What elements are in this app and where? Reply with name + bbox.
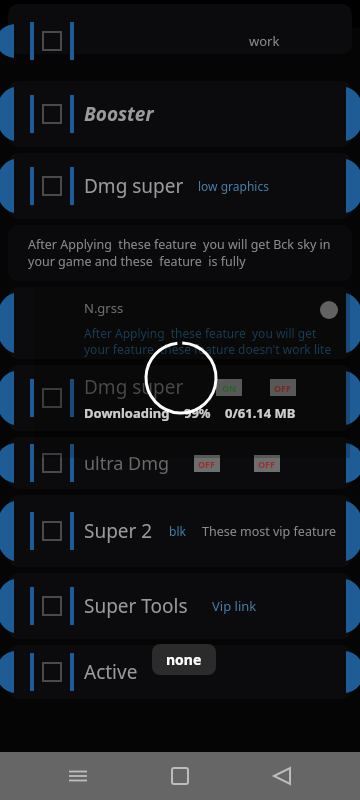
staticText: After Applying these feature you will ge… — [84, 325, 336, 357]
staticText: work — [249, 32, 280, 50]
staticText: N.grss — [84, 299, 124, 317]
staticText: These most vip feature — [202, 523, 337, 540]
button[interactable]: Booster — [0, 81, 360, 147]
staticText: Super 2 — [84, 518, 153, 544]
staticText: Dmg super — [84, 374, 184, 400]
button[interactable]: Back — [258, 752, 306, 800]
staticText: low graphics — [198, 178, 269, 194]
staticText: Booster — [84, 101, 154, 127]
button[interactable]: Dmg super — [0, 153, 360, 219]
staticText: OFF — [258, 458, 276, 470]
button[interactable]: ultra Dmg — [0, 437, 360, 489]
staticText: After Applying these feature you will ge… — [28, 236, 332, 270]
staticText: ON — [222, 382, 237, 394]
button[interactable]: Active — [0, 645, 360, 699]
staticText: Super Tools — [84, 593, 188, 619]
staticText: Vip link — [212, 597, 257, 615]
staticText: 0/61.14 MB — [225, 404, 296, 422]
staticText: none — [166, 650, 202, 669]
staticText: ultra Dmg — [84, 451, 170, 476]
staticText: blk — [169, 523, 186, 539]
staticText: 99% — [184, 404, 211, 422]
button[interactable]: Home — [156, 752, 204, 800]
staticText: Active — [84, 659, 138, 685]
staticText: OFF — [198, 458, 216, 470]
staticText: OFF — [274, 382, 292, 394]
staticText: Dmg super — [84, 173, 184, 199]
button[interactable]: Super Tools — [0, 573, 360, 639]
button[interactable]: Dmg super — [0, 365, 360, 431]
button[interactable]: Super 2 — [0, 495, 360, 567]
staticText: Downloading — [84, 404, 170, 422]
button[interactable]: Recent apps — [54, 752, 102, 800]
